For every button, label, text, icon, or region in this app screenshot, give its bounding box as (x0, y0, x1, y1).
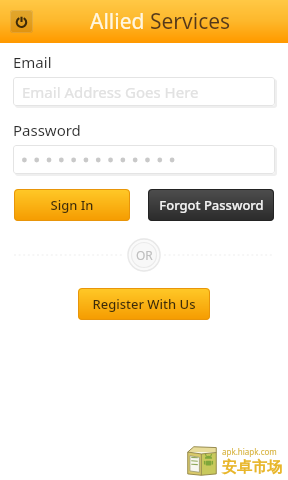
staticText: Register With Us (92, 295, 196, 313)
button[interactable]: Register With Us (78, 288, 210, 320)
staticText: 安卓市场 (222, 458, 282, 477)
button[interactable]: Sign In (14, 189, 130, 221)
staticText: Sign In (50, 196, 94, 214)
button[interactable] (13, 145, 275, 174)
staticText: OR (136, 247, 153, 263)
staticText: Forgot Password (159, 196, 264, 214)
button[interactable]: Email Address Goes Here (13, 77, 275, 106)
staticText: Services (150, 7, 231, 36)
staticText: Allied (90, 7, 145, 36)
button[interactable]: Forgot Password (148, 189, 274, 221)
staticText: Email Address Goes Here (22, 82, 199, 102)
staticText: apk.hiapk.com (222, 446, 277, 457)
button[interactable]: Power (10, 10, 33, 33)
staticText: Password (13, 120, 81, 140)
staticText: Email (13, 52, 52, 72)
